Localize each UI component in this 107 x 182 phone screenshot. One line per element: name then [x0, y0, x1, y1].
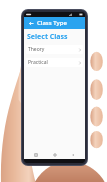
button[interactable]: Recent apps [30, 150, 42, 159]
button[interactable]: Back [67, 150, 79, 159]
staticText: Class Type [37, 19, 67, 27]
button[interactable]: Back [27, 19, 35, 27]
staticText: Theory [28, 46, 45, 53]
staticText: Practical [28, 59, 48, 66]
staticText: Select Class Type [27, 32, 85, 42]
button[interactable]: Home [49, 150, 61, 159]
button[interactable]: Theory [26, 45, 83, 54]
button[interactable]: Practical [26, 58, 83, 67]
